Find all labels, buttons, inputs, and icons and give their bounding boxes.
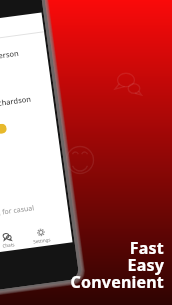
staticText: Michael Richardson [0,94,32,113]
button[interactable]: Settings [23,222,60,249]
staticText: Fast Easy Convenient [70,237,164,293]
button[interactable]: Michael Richardson [0,79,57,143]
staticText: looking for casual encounters [0,199,62,221]
staticText: Settings [33,236,51,245]
button[interactable]: Jessica Sanderson [0,32,50,97]
staticText: Chats [2,241,16,249]
button[interactable]: Bec [0,173,70,238]
staticText: Jessica Sanderson [0,48,19,66]
button[interactable]: Amanda [0,125,63,191]
button[interactable]: Chats [0,227,26,253]
